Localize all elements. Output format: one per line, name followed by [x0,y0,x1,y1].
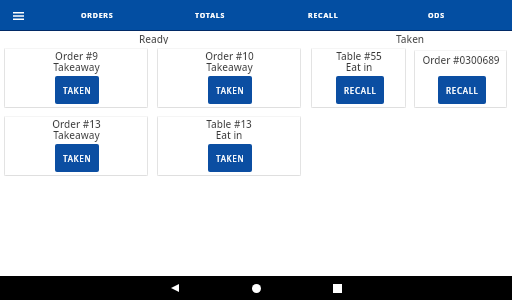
staticText: Table #13 Eat in [206,117,252,142]
button[interactable]: ODS [380,0,493,31]
staticText: RECALL [446,85,479,96]
button[interactable]: RECALL [438,76,486,104]
button[interactable]: Back [151,276,199,300]
button[interactable]: TOTALS [154,0,267,31]
button[interactable]: Table #13 Eat in [157,116,301,176]
button[interactable]: Open navigation menu [0,0,41,31]
button[interactable]: TAKEN [55,144,99,172]
staticText: TOTALS [195,11,226,21]
button[interactable]: RECALL [336,76,384,104]
button[interactable]: Table #55 Eat in [311,48,406,108]
staticText: Order #13 Takeaway [52,117,101,142]
staticText: Order #10 Takeaway [205,49,254,74]
button[interactable]: Recent apps [313,276,361,300]
staticText: Order #0300689 [422,53,500,67]
staticText: TAKEN [216,153,245,164]
staticText: Order #9 Takeaway [53,49,100,74]
button[interactable]: TAKEN [208,144,252,172]
staticText: TAKEN [63,85,92,96]
button[interactable]: Order #10 Takeaway [157,48,301,108]
staticText: Ready [139,32,169,44]
button[interactable]: RECALL [267,0,380,31]
staticText: TAKEN [63,153,92,164]
staticText: Taken [396,32,425,44]
staticText: ODS [428,11,445,21]
staticText: ORDERS [81,11,114,21]
button[interactable]: Home [232,276,280,300]
staticText: Table #55 Eat in [336,49,382,74]
button[interactable]: Order #9 Takeaway [4,48,148,108]
button[interactable]: TAKEN [55,76,99,104]
staticText: RECALL [344,85,377,96]
button[interactable]: TAKEN [208,76,252,104]
staticText: RECALL [308,11,339,21]
button[interactable]: ORDERS [41,0,154,31]
button[interactable]: Order #13 Takeaway [4,116,148,176]
staticText: TAKEN [216,85,245,96]
button[interactable]: Order #0300689 [414,50,507,108]
